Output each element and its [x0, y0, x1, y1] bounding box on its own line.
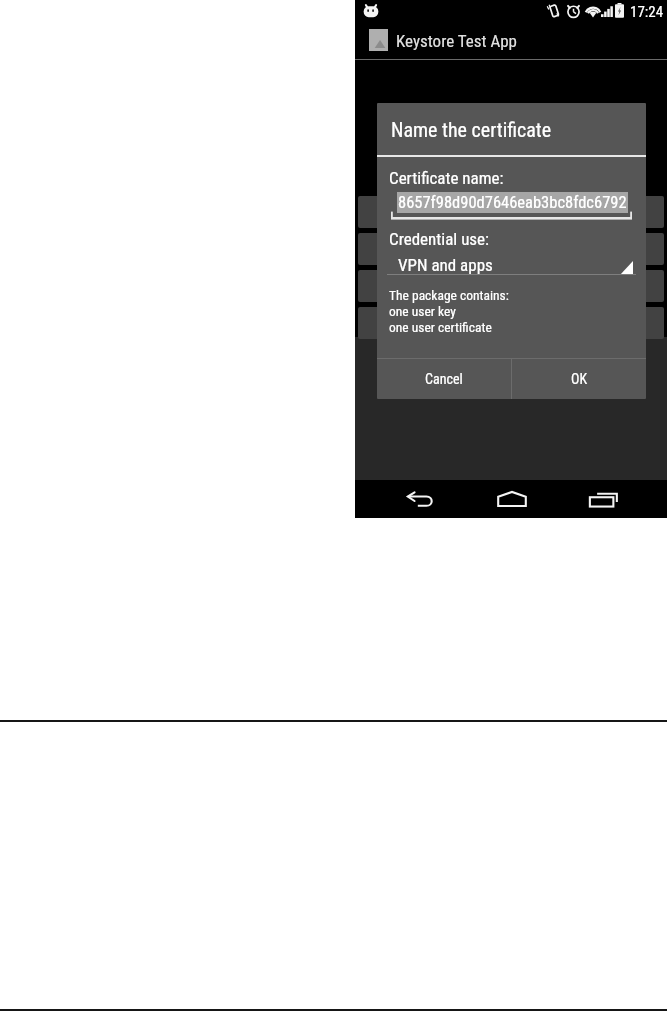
button[interactable] [358, 307, 664, 339]
button[interactable] [358, 196, 664, 228]
button[interactable]: Cancel [377, 359, 511, 399]
button[interactable]: 8657f98d90d7646eab3bc8fdc6792 [391, 192, 632, 213]
button[interactable] [358, 270, 664, 302]
staticText: 17:24 [630, 3, 664, 21]
staticText: 8657f98d90d7646eab3bc8fdc6792 [398, 193, 627, 212]
button[interactable] [358, 233, 664, 265]
staticText: Cancel [425, 371, 463, 387]
button[interactable]: VPN and apps [387, 255, 636, 275]
button[interactable]: OK [512, 359, 646, 399]
button[interactable]: Home [482, 480, 542, 518]
staticText: The package contains: [389, 287, 509, 303]
staticText: Certificate name: [389, 168, 504, 188]
staticText: one user key [389, 303, 456, 319]
staticText: VPN and apps [398, 255, 493, 275]
button[interactable]: Back [390, 480, 450, 518]
button[interactable]: Recent apps [573, 480, 633, 518]
staticText: OK [571, 371, 588, 387]
staticText: Keystore Test App [396, 31, 517, 51]
staticText: Credential use: [389, 229, 490, 249]
staticText: Name the certificate [391, 118, 552, 141]
staticText: one user certificate [389, 319, 492, 335]
